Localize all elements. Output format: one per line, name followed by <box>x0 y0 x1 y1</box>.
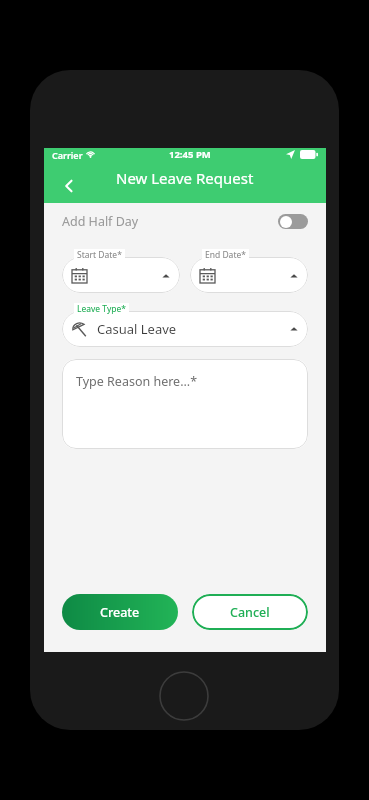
button[interactable]: Add Half Day <box>44 203 326 239</box>
staticText: Casual Leave <box>97 320 177 338</box>
staticText: Create <box>100 604 140 621</box>
staticText: End Date* <box>205 249 246 261</box>
staticText: New Leave Request <box>116 168 254 188</box>
button[interactable]: Type Reason here...* <box>62 359 308 449</box>
staticText: Leave Type* <box>77 303 126 315</box>
button[interactable] <box>190 257 308 293</box>
staticText: 12:45 PM <box>169 148 211 161</box>
other: Toggle half day <box>278 214 308 229</box>
button[interactable]: Back <box>54 171 84 201</box>
button[interactable]: Cancel <box>192 594 308 630</box>
button[interactable] <box>62 257 180 293</box>
staticText: Add Half Day <box>62 213 139 230</box>
staticText: Type Reason here...* <box>76 373 198 390</box>
button[interactable]: Casual Leave <box>62 311 308 347</box>
staticText: Cancel <box>230 604 270 621</box>
staticText: Carrier <box>52 149 83 161</box>
button[interactable]: Create <box>62 594 178 630</box>
staticText: Start Date* <box>77 249 122 261</box>
